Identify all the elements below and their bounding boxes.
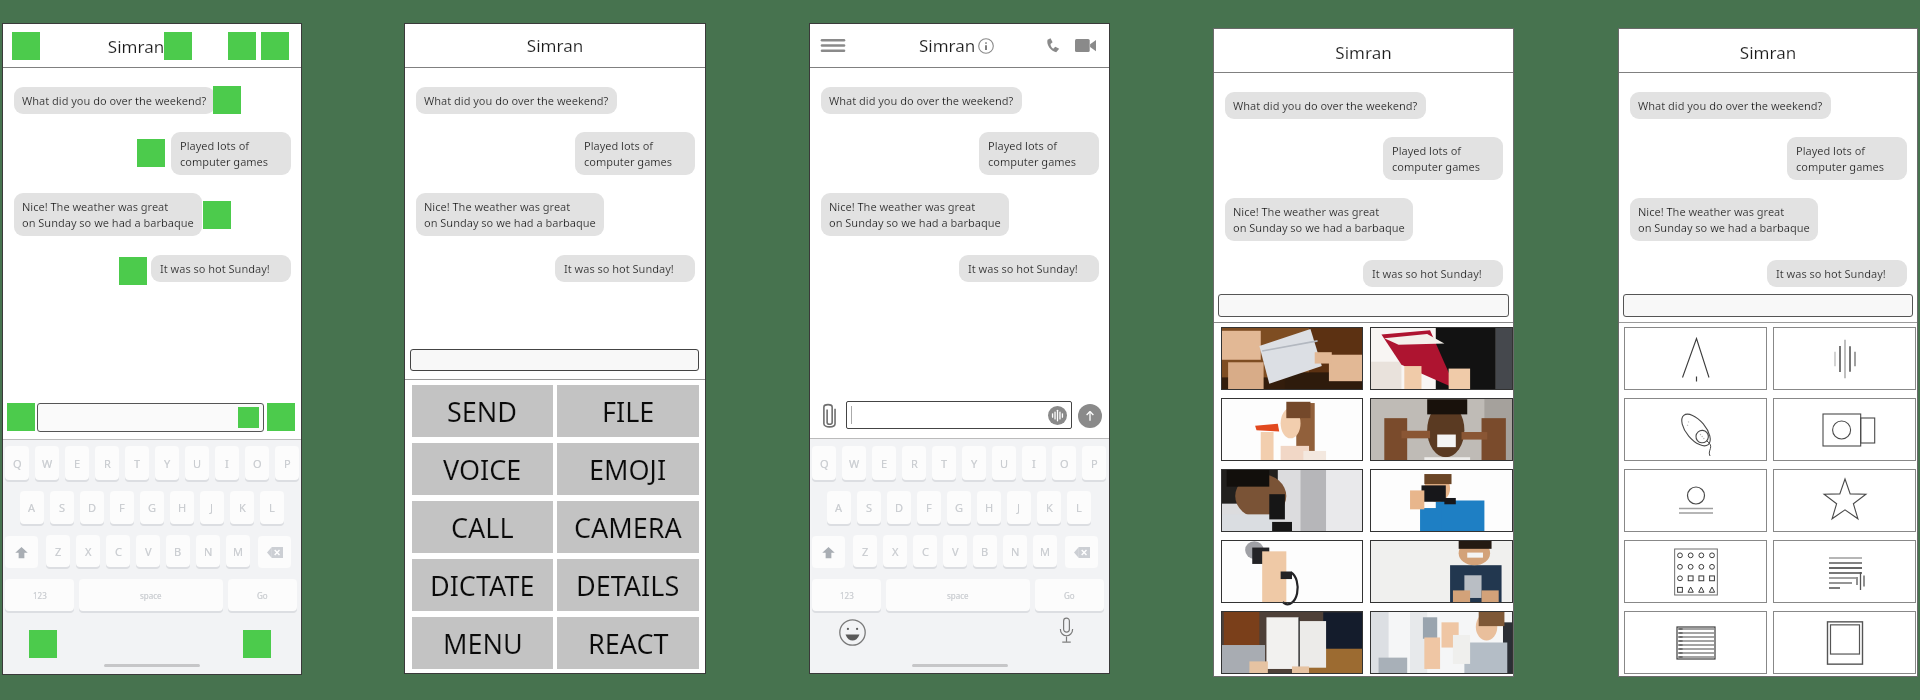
button[interactable]: C	[106, 535, 130, 567]
button[interactable]: What did you do over the weekend?	[1225, 92, 1426, 119]
button[interactable]: U	[185, 446, 209, 480]
button[interactable]: Camera	[1773, 469, 1916, 532]
button[interactable]: Message input	[1218, 294, 1509, 317]
button[interactable]: Dictate	[1221, 540, 1363, 603]
button[interactable]: C	[913, 535, 937, 567]
button[interactable]: Played lots of computer games	[1383, 137, 1503, 180]
button[interactable]: N	[196, 535, 220, 567]
button[interactable]: F	[917, 491, 941, 524]
button[interactable]: Shift	[812, 536, 845, 568]
button[interactable]: CALL	[412, 501, 553, 553]
button[interactable]: A	[20, 491, 44, 524]
button[interactable]: H	[977, 491, 1001, 524]
button[interactable]: B	[166, 535, 190, 567]
button[interactable]: Details	[1370, 540, 1513, 603]
button[interactable]: K	[230, 491, 254, 524]
button[interactable]: J	[1007, 491, 1031, 524]
button[interactable]: N	[1003, 535, 1027, 567]
button[interactable]: Attach file	[820, 403, 840, 429]
button[interactable]: Message input	[846, 401, 1072, 429]
button[interactable]: J	[200, 491, 224, 524]
button[interactable]: Emoji	[838, 618, 866, 646]
button[interactable]: It was so hot Sunday!	[151, 255, 291, 282]
button[interactable]: Z	[46, 535, 70, 567]
button[interactable]: Menu	[1221, 611, 1363, 674]
button[interactable]: F	[110, 491, 134, 524]
button[interactable]: L	[1067, 491, 1091, 524]
button[interactable]: Go	[228, 579, 297, 611]
button[interactable]: X	[76, 535, 100, 567]
button[interactable]: Call	[1221, 469, 1363, 532]
button[interactable]: O	[1052, 446, 1076, 480]
button[interactable]: W	[35, 446, 59, 480]
button[interactable]: P	[1082, 446, 1106, 480]
button[interactable]: CAMERA	[557, 501, 699, 553]
button[interactable]: Camera	[1370, 469, 1513, 532]
button[interactable]: space	[79, 579, 223, 611]
button[interactable]: space	[886, 579, 1030, 611]
button[interactable]: H	[170, 491, 194, 524]
button[interactable]: T	[125, 446, 149, 480]
button[interactable]: Shift	[5, 536, 38, 568]
button[interactable]: Send	[1221, 327, 1363, 390]
button[interactable]: Backspace	[1065, 536, 1098, 568]
button[interactable]: Emoji	[1370, 398, 1513, 461]
button[interactable]: FILE	[557, 385, 699, 437]
button[interactable]: P	[275, 446, 299, 480]
button[interactable]: React	[1370, 611, 1513, 674]
button[interactable]: It was so hot Sunday!	[1363, 260, 1503, 287]
button[interactable]: DICTATE	[412, 559, 553, 611]
button[interactable]: V	[136, 535, 160, 567]
button[interactable]: It was so hot Sunday!	[555, 255, 695, 282]
button[interactable]: Q	[812, 446, 836, 480]
button[interactable]: K	[1037, 491, 1061, 524]
button[interactable]: Call	[1624, 469, 1767, 532]
button[interactable]: Voice	[1221, 398, 1363, 461]
button[interactable]: B	[973, 535, 997, 567]
button[interactable]: MENU	[412, 617, 553, 669]
button[interactable]: It was so hot Sunday!	[1767, 260, 1907, 287]
button[interactable]: Video call	[1074, 38, 1096, 52]
button[interactable]: Played lots of computer games	[1787, 137, 1907, 180]
button[interactable]: E	[872, 446, 896, 480]
button[interactable]: I	[1022, 446, 1046, 480]
button[interactable]: Message input	[37, 403, 264, 432]
button[interactable]: Nice! The weather was great on Sunday so…	[416, 193, 604, 236]
button[interactable]: Played lots of computer games	[979, 132, 1099, 175]
button[interactable]: G	[947, 491, 971, 524]
button[interactable]: U	[992, 446, 1016, 480]
button[interactable]: VOICE	[412, 443, 553, 495]
button[interactable]: Voice message	[1048, 406, 1067, 425]
button[interactable]: What did you do over the weekend?	[1630, 92, 1831, 119]
button[interactable]: DETAILS	[557, 559, 699, 611]
button[interactable]: Voice	[1624, 398, 1767, 461]
button[interactable]: Dictate	[1052, 616, 1080, 644]
button[interactable]: S	[857, 491, 881, 524]
button[interactable]: Details	[1773, 540, 1916, 603]
button[interactable]: O	[245, 446, 269, 480]
button[interactable]: V	[943, 535, 967, 567]
button[interactable]: I	[215, 446, 239, 480]
button[interactable]: Go	[1035, 579, 1104, 611]
button[interactable]: Nice! The weather was great on Sunday so…	[14, 193, 202, 236]
button[interactable]: SEND	[412, 385, 553, 437]
button[interactable]: It was so hot Sunday!	[959, 255, 1099, 282]
button[interactable]: Dictate	[1624, 540, 1767, 603]
button[interactable]: What did you do over the weekend?	[821, 87, 1022, 114]
button[interactable]: 123	[812, 579, 881, 611]
button[interactable]: Y	[962, 446, 986, 480]
button[interactable]: Played lots of computer games	[575, 132, 695, 175]
button[interactable]: Info	[978, 38, 994, 54]
button[interactable]: Nice! The weather was great on Sunday so…	[821, 193, 1009, 236]
button[interactable]: D	[887, 491, 911, 524]
button[interactable]: X	[883, 535, 907, 567]
